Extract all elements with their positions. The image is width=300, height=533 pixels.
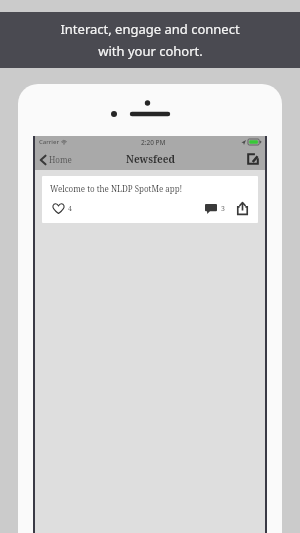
button[interactable]: Compose new post — [241, 149, 265, 169]
staticText: Carrier — [39, 138, 59, 146]
staticText: Newsfeed — [126, 152, 175, 166]
staticText: 4 — [68, 204, 72, 214]
staticText: Home — [49, 154, 72, 165]
button[interactable]: Comments, 3 comments — [203, 202, 227, 216]
staticText: with your cohort. — [98, 42, 203, 60]
button[interactable]: Share — [235, 200, 250, 217]
staticText: Welcome to the NLDP SpotMe app! — [50, 183, 183, 194]
staticText: 2:20 PM — [141, 138, 166, 147]
button[interactable]: Welcome to the NLDP SpotMe app! — [42, 176, 258, 223]
button[interactable]: Like, 4 likes — [50, 201, 74, 216]
staticText: Interact, engage and connect — [60, 20, 240, 38]
staticText: 3 — [221, 204, 225, 214]
button[interactable]: Home — [35, 150, 80, 169]
